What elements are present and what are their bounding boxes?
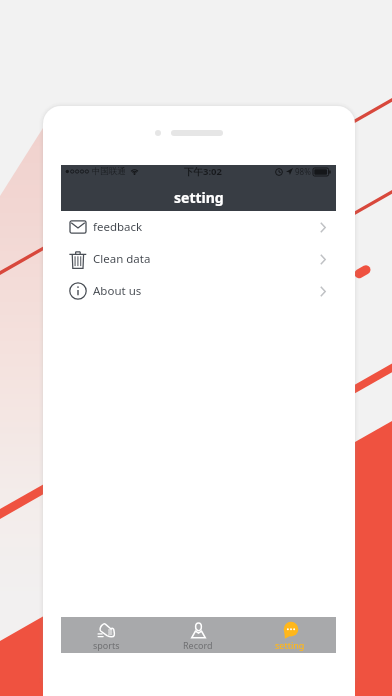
staticText: sports — [93, 639, 120, 651]
staticText: About us — [93, 283, 142, 299]
staticText: Clean data — [93, 251, 151, 267]
staticText: 下午3:02 — [184, 165, 222, 178]
button[interactable]: sports — [61, 617, 152, 653]
button[interactable]: Record — [152, 617, 244, 653]
staticText: feedback — [93, 219, 143, 235]
staticText: 中国联通 — [92, 166, 126, 177]
button[interactable]: feedback — [61, 211, 336, 243]
staticText: setting — [174, 188, 224, 207]
button[interactable]: About us — [61, 275, 336, 307]
staticText: 98% — [295, 166, 311, 177]
staticText: Record — [183, 639, 213, 651]
button[interactable]: setting — [244, 617, 336, 653]
staticText: setting — [275, 639, 305, 651]
button[interactable]: Clean data — [61, 243, 336, 275]
